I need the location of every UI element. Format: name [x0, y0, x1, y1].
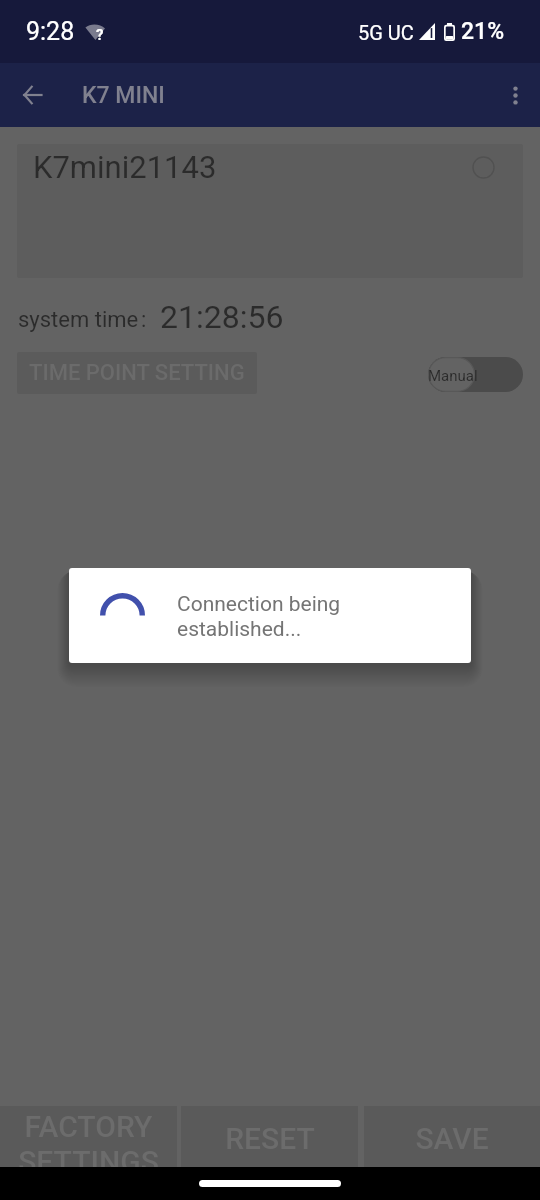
staticText: K7 MINI: [82, 82, 165, 109]
button[interactable]: FACTORY SETTINGS: [0, 1106, 177, 1167]
staticText: 21%: [461, 18, 505, 45]
staticText: Manual: [428, 367, 478, 385]
staticText: ?: [96, 26, 104, 42]
staticText: system time: [18, 307, 139, 333]
staticText: K7mini21143: [33, 149, 217, 185]
staticText: 9:28: [26, 17, 75, 46]
button[interactable]: RESET: [181, 1106, 358, 1167]
staticText: FACTORY SETTINGS: [18, 1109, 159, 1170]
staticText: TIME POINT SETTING: [29, 360, 245, 386]
staticText: 21:28:56: [160, 298, 284, 336]
staticText: :: [141, 307, 147, 333]
button[interactable]: Back: [10, 73, 54, 117]
staticText: Connection being established...: [177, 592, 341, 642]
staticText: RESET: [225, 1121, 315, 1156]
button[interactable]: More options: [493, 73, 537, 117]
button[interactable]: K7mini21143: [17, 144, 523, 278]
staticText: SAVE: [415, 1121, 489, 1156]
button[interactable]: TIME POINT SETTING: [17, 352, 257, 394]
staticText: 5G UC: [358, 21, 414, 44]
button[interactable]: Manual: [428, 357, 523, 392]
button[interactable]: SAVE: [364, 1106, 540, 1167]
